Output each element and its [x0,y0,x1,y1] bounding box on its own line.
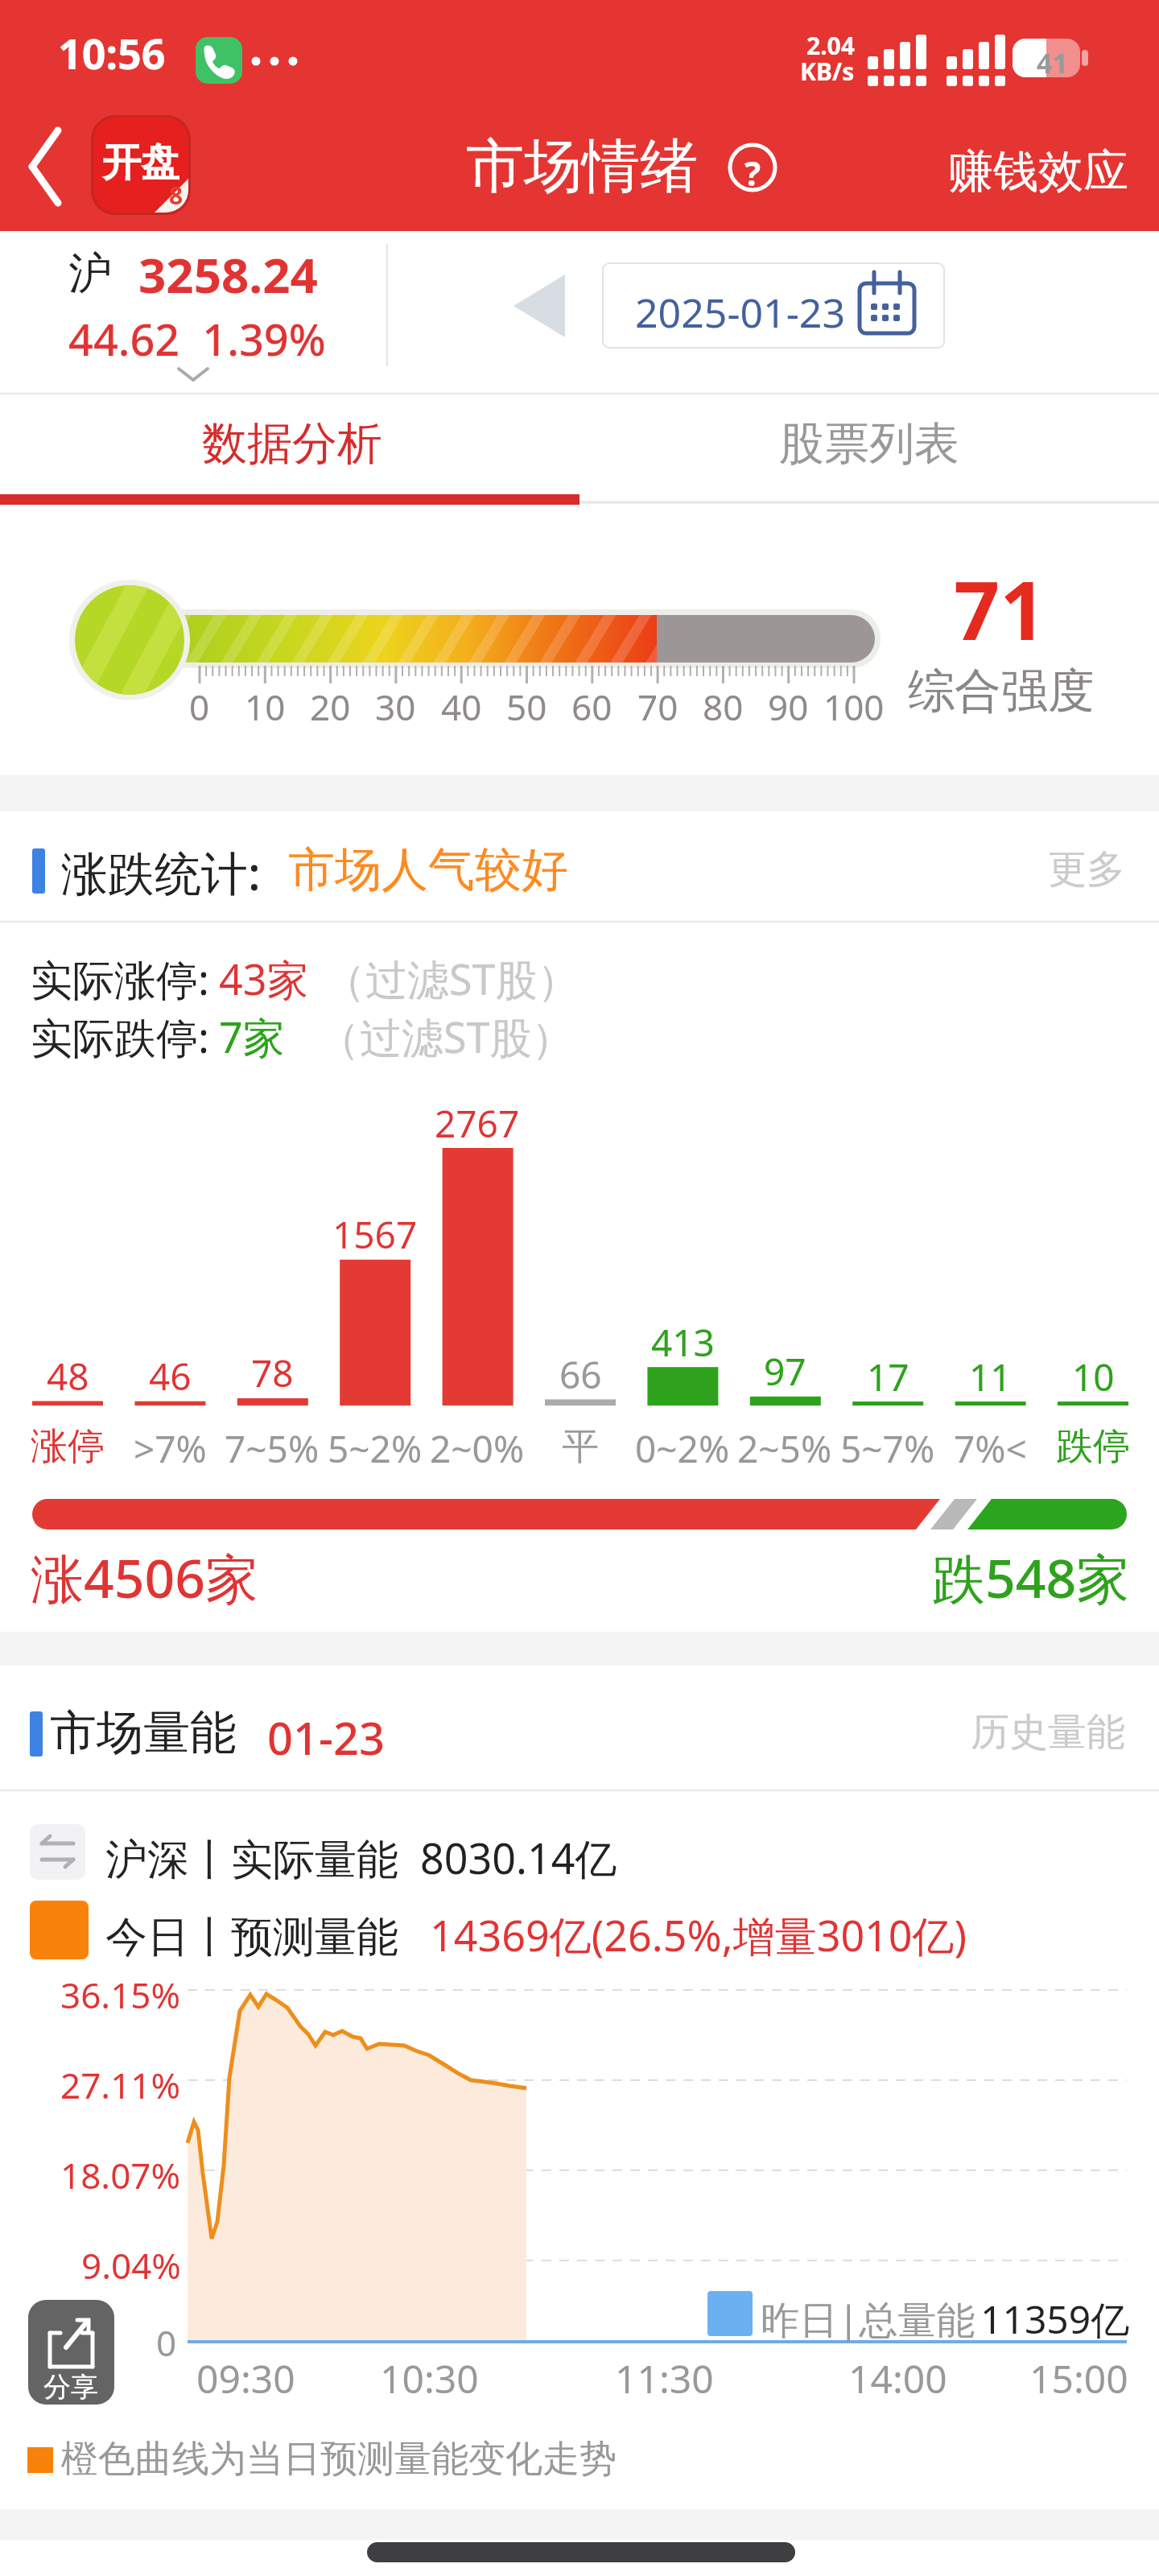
staticText: 30 [375,683,416,731]
staticText: 更多 [1048,845,1125,894]
staticText: 市场人气较好 [288,840,568,899]
staticText: 橙色曲线为当日预测量能变化走势 [61,2436,617,2483]
staticText: 股票列表 [779,415,959,473]
staticText: 2025-01-23 [635,285,845,340]
staticText: 14:00 [848,2352,947,2405]
button[interactable]: 更多 [884,845,1125,894]
staticText: 1567 [332,1209,418,1260]
staticText: 涨4506家 [31,1541,259,1613]
staticText: 开盘 [102,138,179,187]
staticText: 78 [251,1348,294,1398]
staticText: 2~5% [737,1423,832,1474]
staticText: 27.11% [60,2061,181,2109]
staticText: 5~2% [328,1423,423,1474]
staticText: 5~7% [840,1423,935,1474]
staticText: 2.04 [806,29,855,62]
staticText: 涨跌统计: [61,840,261,904]
staticText: 18.07% [60,2151,181,2199]
staticText: （过滤ST股） [324,950,579,1007]
staticText: 0 [189,683,210,731]
button[interactable] [603,263,944,348]
staticText: 70 [637,683,678,731]
staticText: 今日丨预测量能 [105,1906,410,1963]
button[interactable]: 赚钱效应 [806,143,1128,200]
staticText: 40 [441,683,482,731]
staticText: 平 [562,1423,599,1470]
staticText: 44.62 1.39% [68,309,326,369]
staticText: 实际跌停: [31,1008,209,1065]
staticText: 10 [1072,1352,1115,1402]
staticText: 7%< [954,1423,1027,1474]
staticText: 涨停 [31,1423,105,1470]
staticText: 66 [559,1349,602,1400]
staticText: 48 [47,1351,89,1402]
staticText: >7% [134,1423,207,1474]
staticText: 昨日|总量能 [761,2293,975,2346]
staticText: 数据分析 [202,415,382,473]
staticText: 20 [310,683,351,731]
staticText: 80 [703,683,744,731]
staticText: 14369亿(26.5%,增量3010亿) [430,1906,967,1963]
staticText: 2767 [435,1098,520,1149]
staticText: 11 [969,1352,1012,1402]
staticText: 01-23 [267,1707,386,1768]
staticText: 市场量能 [50,1703,237,1762]
staticText: 10:30 [380,2352,479,2405]
staticText: 11:30 [615,2352,714,2405]
staticText: 赚钱效应 [948,143,1128,200]
staticText: 沪 [68,246,112,301]
staticText: 46 [149,1351,192,1402]
button[interactable] [28,2300,114,2405]
staticText: 综合强度 [908,662,1095,720]
staticText: 100 [823,683,885,731]
staticText: （过滤ST股） [318,1008,574,1065]
staticText: 跌548家 [932,1541,1130,1613]
staticText: 8 [169,179,184,212]
staticText: 实际涨停: [31,950,209,1007]
staticText: 17 [867,1352,909,1402]
staticText: 分享 [43,2370,98,2405]
staticText: 3258.24 [138,242,318,308]
staticText: 10 [245,683,286,731]
staticText: 15:00 [1029,2352,1128,2405]
staticText: 沪深丨实际量能 8030.14亿 [105,1829,617,1886]
staticText: 10:56 [58,24,166,81]
button[interactable]: 历史量能 [884,1708,1125,1757]
staticText: 市场情绪 [466,130,698,204]
staticText: 43家 [219,950,309,1007]
staticText: 0 [156,2318,177,2367]
staticText: 36.15% [60,1971,181,2019]
staticText: 历史量能 [971,1708,1125,1757]
staticText: ? [744,150,761,196]
staticText: 跌停 [1056,1423,1130,1470]
staticText: 97 [764,1346,806,1397]
staticText: 41 [1037,44,1068,81]
staticText: 9.04% [81,2241,181,2289]
staticText: 413 [651,1317,715,1368]
staticText: 71 [954,554,1046,663]
staticText: 11359亿 [980,2293,1130,2346]
staticText: 2~0% [430,1423,525,1474]
staticText: 09:30 [196,2352,295,2405]
staticText: KB/s [800,55,855,88]
staticText: 90 [768,683,809,731]
staticText: 50 [506,683,547,731]
staticText: 60 [571,683,612,731]
staticText: 0~2% [635,1423,730,1474]
button[interactable] [16,121,80,217]
staticText: 7~5% [225,1423,320,1474]
staticText: 7家 [219,1008,285,1065]
button[interactable] [0,395,579,505]
button[interactable] [579,395,1159,505]
